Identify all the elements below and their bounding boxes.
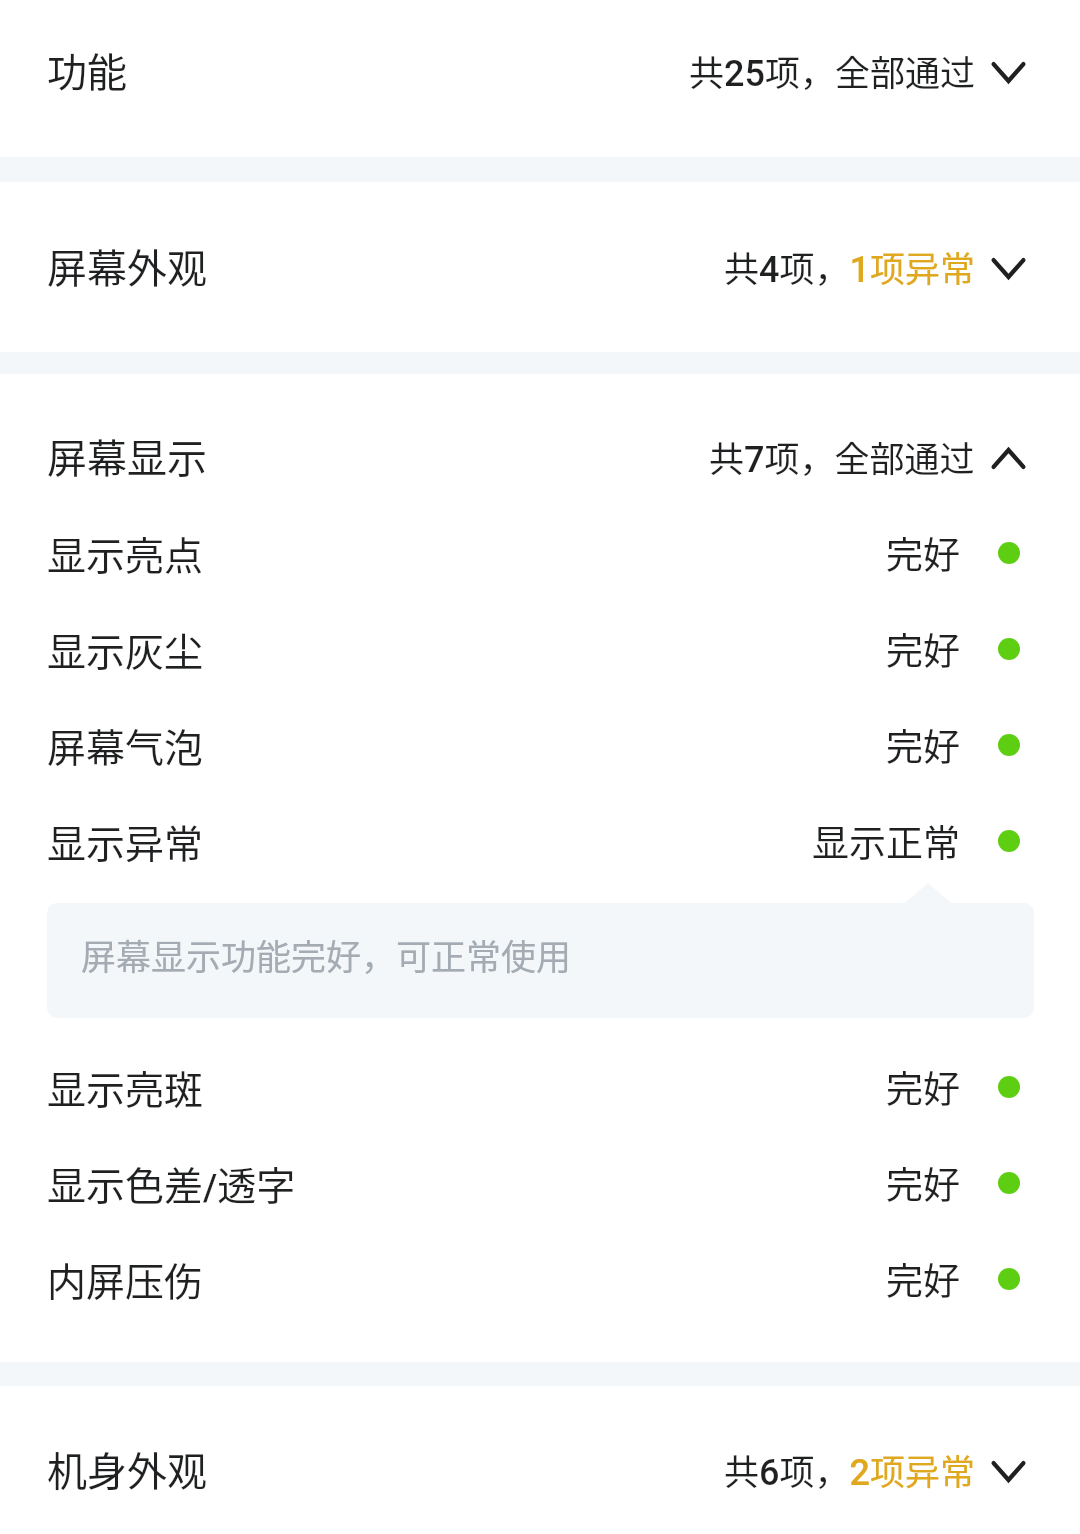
button[interactable]: 功能 <box>0 0 1080 140</box>
staticText: 屏幕显示 <box>47 427 207 485</box>
other: Collapse section <box>992 433 1025 479</box>
staticText: 显示异常 <box>47 813 204 869</box>
staticText: 完好 <box>886 1252 960 1306</box>
other: Expand section <box>992 47 1025 93</box>
staticText: 完好 <box>886 1156 960 1210</box>
other: Expand section <box>992 243 1025 289</box>
button[interactable]: 屏幕显示 <box>0 407 1080 505</box>
staticText: 共7项，全部通过 <box>709 431 975 482</box>
staticText: 共25项，全部通过 <box>689 45 975 96</box>
staticText: 完好 <box>886 622 960 676</box>
staticText: 功能 <box>47 41 127 99</box>
staticText: 完好 <box>886 526 960 580</box>
staticText: 完好 <box>886 718 960 772</box>
button[interactable]: 显示灰尘 <box>0 601 1080 697</box>
other: Expand section <box>992 1446 1025 1492</box>
button[interactable]: 显示色差/透字 <box>0 1135 1080 1231</box>
staticText: 机身外观 <box>47 1440 207 1498</box>
button[interactable]: 屏幕外观 <box>0 182 1080 350</box>
staticText: 显示亮斑 <box>47 1059 204 1115</box>
button[interactable]: 机身外观 <box>0 1386 1080 1534</box>
staticText: 显示亮点 <box>47 525 204 581</box>
button[interactable]: 屏幕气泡 <box>0 697 1080 793</box>
button[interactable]: 显示亮斑 <box>0 1039 1080 1135</box>
staticText: 显示色差/透字 <box>47 1155 296 1211</box>
staticText: 内屏压伤 <box>47 1251 204 1307</box>
staticText: 共6项，2项异常 <box>724 1444 975 1495</box>
staticText: 显示正常 <box>812 814 960 868</box>
staticText: 屏幕显示功能完好，可正常使用 <box>81 929 572 980</box>
button[interactable]: 显示异常 <box>0 793 1080 889</box>
button[interactable]: 显示亮点 <box>0 505 1080 601</box>
staticText: 共4项，1项异常 <box>724 241 975 292</box>
staticText: 完好 <box>886 1060 960 1114</box>
staticText: 屏幕气泡 <box>47 717 204 773</box>
staticText: 显示灰尘 <box>47 621 204 677</box>
button[interactable]: 内屏压伤 <box>0 1231 1080 1327</box>
staticText: 屏幕外观 <box>47 237 207 295</box>
